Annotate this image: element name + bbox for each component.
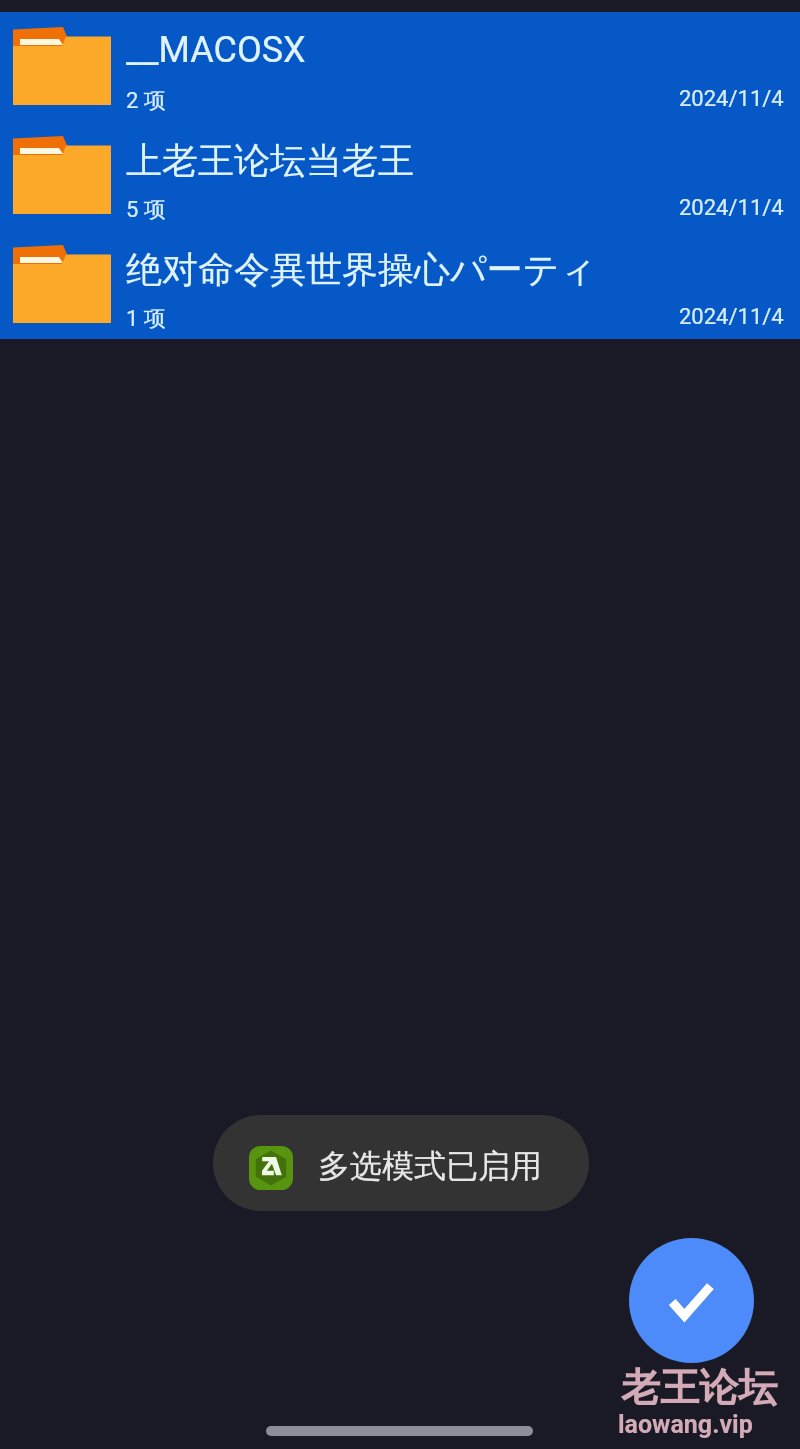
staticText: 老王论坛 (621, 1363, 777, 1412)
staticText: 1 项 (126, 305, 166, 333)
staticText: 2 项 (126, 87, 166, 115)
button[interactable]: 多选模式已启用 (213, 1115, 589, 1211)
staticText: 上老王论坛当老王 (126, 138, 414, 183)
button[interactable]: __MACOSX (0, 12, 800, 121)
staticText: 2024/11/4 (679, 195, 784, 221)
staticText: 多选模式已启用 (318, 1146, 542, 1186)
button[interactable]: 上老王论坛当老王 (0, 121, 800, 230)
staticText: laowang.vip (618, 1410, 753, 1439)
staticText: 5 项 (126, 196, 166, 224)
staticText: 2024/11/4 (679, 86, 784, 112)
staticText: 2024/11/4 (679, 304, 784, 330)
button[interactable]: 绝对命令異世界操心パーティ (0, 230, 800, 339)
staticText: __MACOSX (126, 29, 306, 71)
staticText: 绝对命令異世界操心パーティ (126, 247, 597, 292)
button[interactable]: Confirm selection (629, 1238, 754, 1363)
